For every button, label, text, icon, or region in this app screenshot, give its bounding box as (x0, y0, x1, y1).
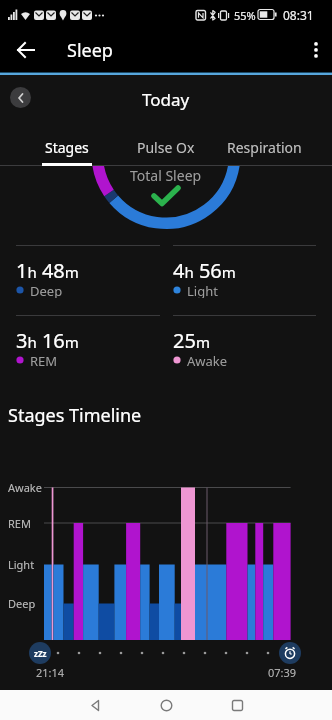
staticText: Respiration (227, 138, 302, 157)
staticText: REM (30, 352, 58, 368)
button[interactable] (144, 690, 188, 720)
staticText: Stages Timeline (8, 403, 142, 428)
staticText: 07:39 (268, 665, 297, 680)
button[interactable]: Pulse Ox (116, 128, 215, 166)
staticText: 08:31 (283, 7, 314, 23)
staticText: 4h 56m (173, 257, 236, 284)
staticText: Sleep (67, 38, 113, 63)
staticText: 3h 16m (16, 327, 79, 354)
staticText: Today (142, 88, 190, 111)
button[interactable] (215, 690, 259, 720)
button[interactable]: Stages (18, 128, 116, 166)
staticText: Stages (45, 138, 89, 157)
staticText: Awake (8, 480, 42, 495)
staticText: Deep (8, 596, 36, 611)
button[interactable] (279, 642, 301, 664)
button[interactable] (73, 690, 117, 720)
staticText: Light (8, 557, 35, 572)
staticText: zZz (34, 648, 47, 659)
staticText: Light (187, 282, 218, 298)
button[interactable]: zZz (29, 642, 51, 664)
staticText: 25m (173, 327, 210, 354)
staticText: 55% (234, 8, 256, 23)
staticText: Total Sleep (130, 166, 202, 185)
staticText: REM (8, 516, 31, 531)
button[interactable] (8, 32, 44, 68)
button[interactable] (300, 34, 332, 66)
button[interactable] (10, 87, 31, 108)
button[interactable]: Respiration (215, 128, 314, 166)
staticText: Pulse Ox (137, 138, 195, 157)
staticText: Awake (187, 352, 228, 368)
staticText: 1h 48m (16, 257, 79, 284)
staticText: Deep (30, 282, 63, 298)
staticText: 21:14 (36, 665, 65, 680)
